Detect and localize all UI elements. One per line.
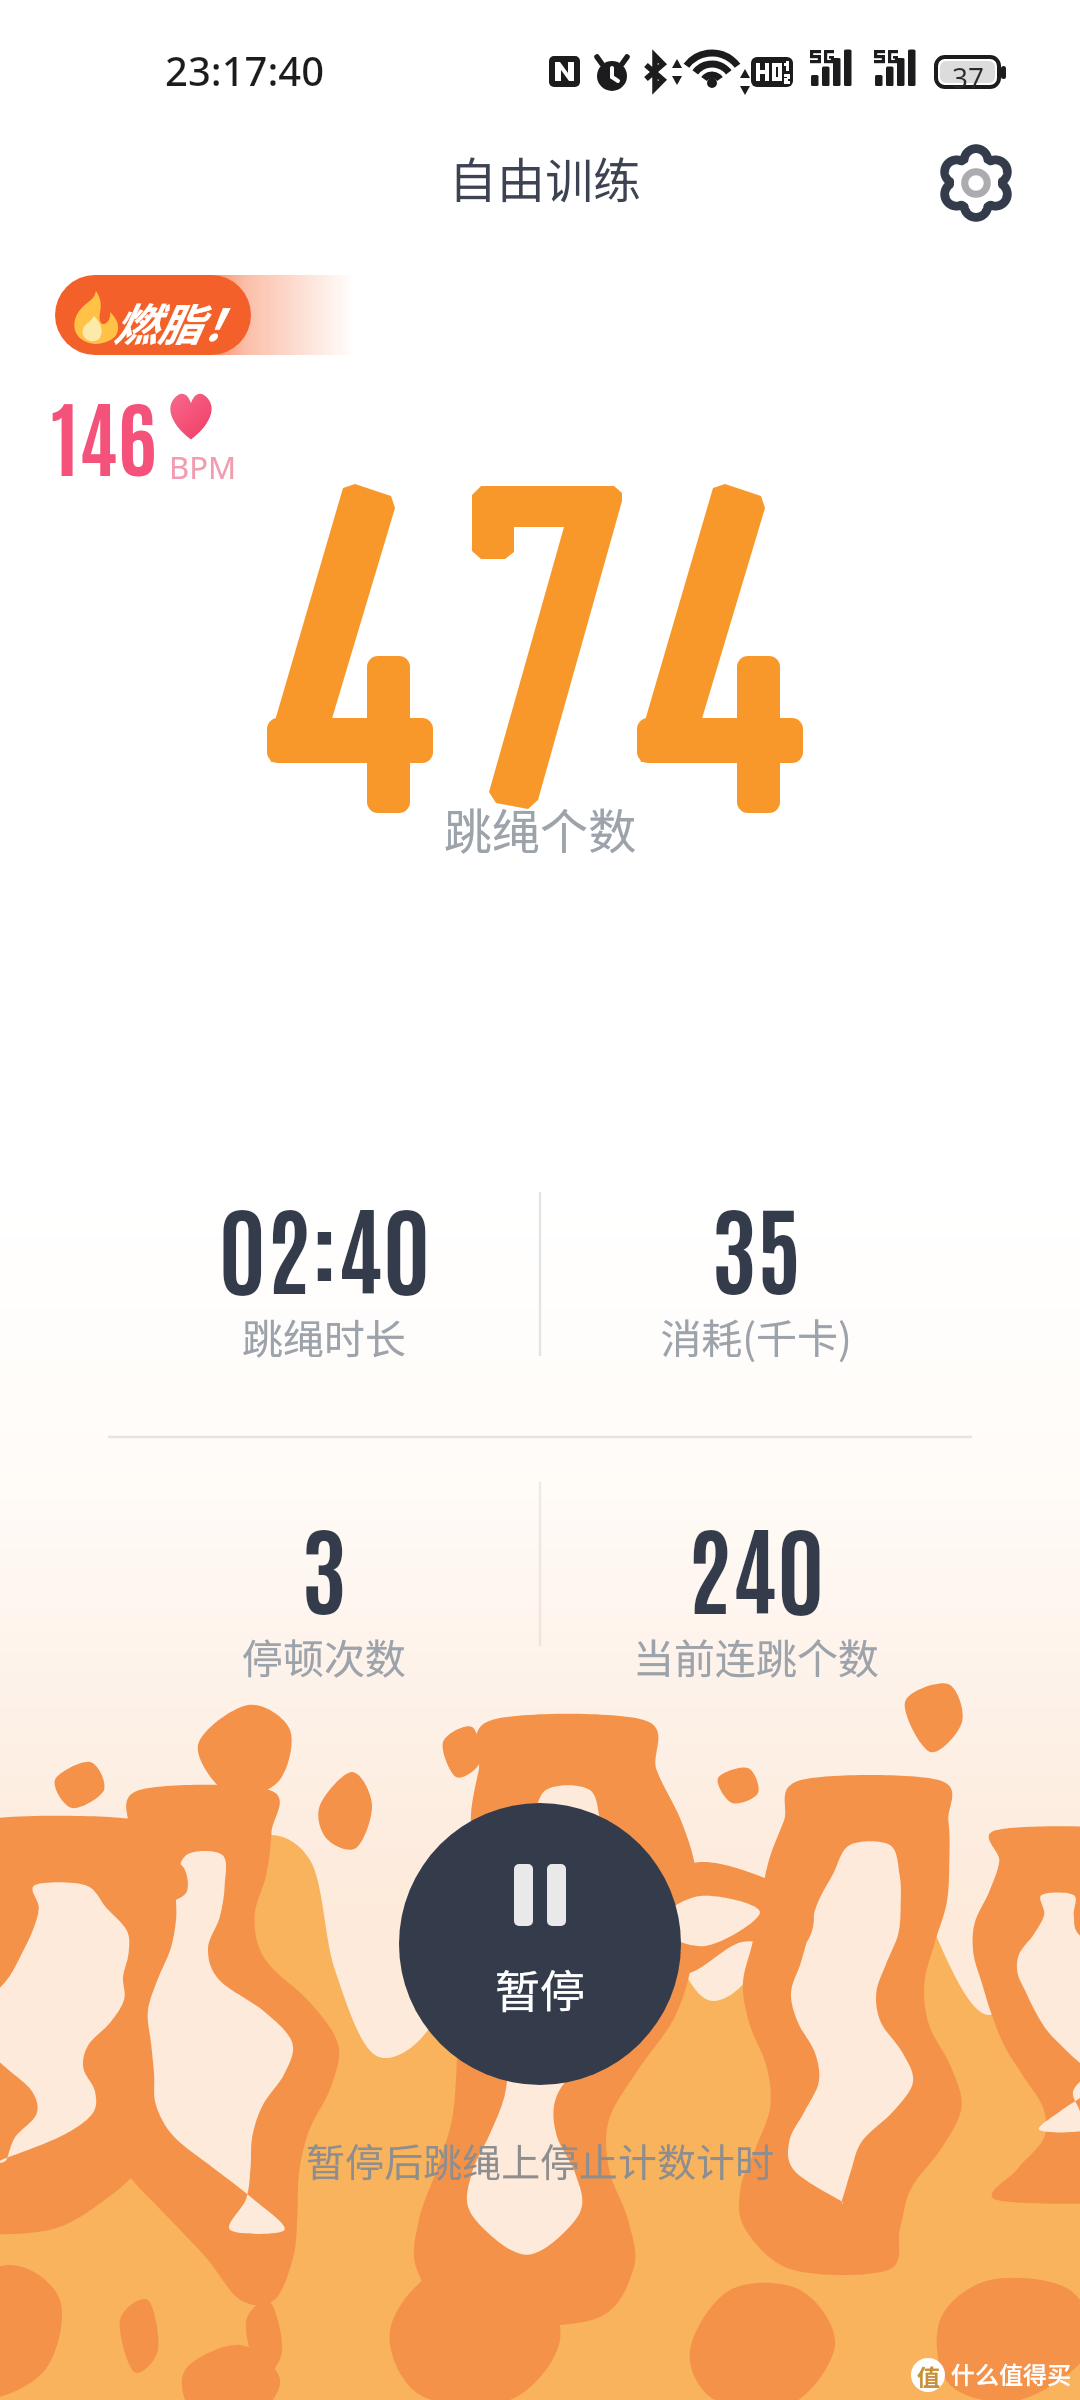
staticText: 02:40 <box>218 1182 431 1308</box>
staticText: 跳绳个数 <box>0 793 1080 863</box>
staticText: 当前连跳个数 <box>633 1626 879 1685</box>
button[interactable]: 暂停 <box>399 1803 681 2085</box>
staticText: 3 <box>301 1502 347 1628</box>
staticText: 跳绳时长 <box>242 1306 406 1365</box>
staticText: 消耗(千卡) <box>660 1306 852 1365</box>
staticText: 146 <box>51 379 157 488</box>
staticText: 240 <box>687 1502 825 1628</box>
button[interactable]: Fat burning zone <box>55 275 355 355</box>
staticText: 37 <box>952 58 985 96</box>
staticText: 暂停后跳绳上停止计数计时 <box>0 2132 1080 2188</box>
staticText: 自由训练 <box>449 142 642 212</box>
staticText: 什么值得买 <box>951 2356 1071 2391</box>
staticText: 值 <box>917 2359 940 2392</box>
staticText: 燃脂！ <box>113 290 245 354</box>
button[interactable]: Settings <box>932 139 1020 227</box>
staticText: 暂停 <box>495 1956 586 2021</box>
staticText: 23:17:40 <box>165 43 325 97</box>
staticText: BPM <box>169 446 237 488</box>
staticText: 停顿次数 <box>242 1626 406 1685</box>
staticText: 35 <box>711 1182 802 1308</box>
